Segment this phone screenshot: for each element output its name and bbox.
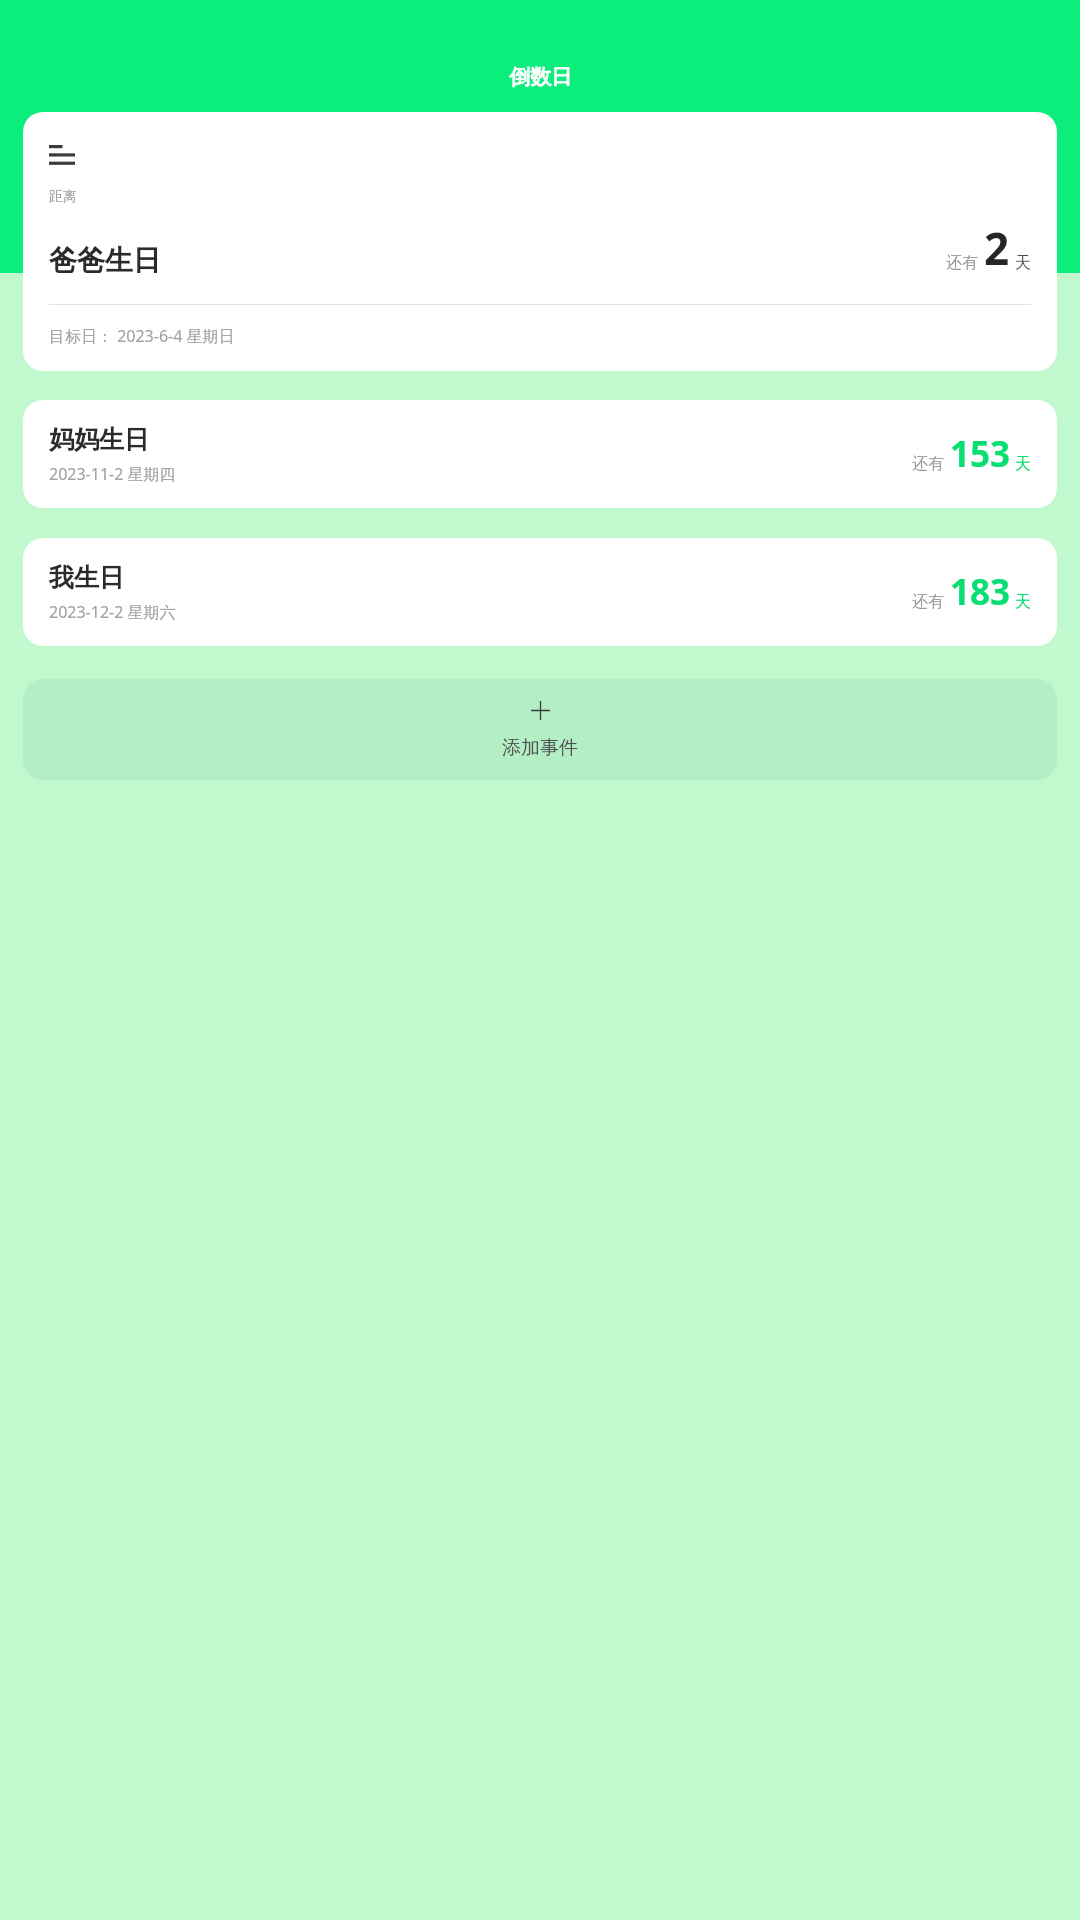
staticText: 还有 (912, 454, 944, 474)
staticText: 天 (1015, 253, 1031, 273)
staticText: 153 (950, 430, 1011, 478)
staticText: 还有 (946, 253, 978, 273)
button[interactable]: Menu (49, 140, 79, 170)
staticText: 添加事件 (502, 736, 578, 760)
staticText: 目标日： 2023-6-4 星期日 (49, 325, 235, 347)
staticText: 妈妈生日 (49, 424, 149, 455)
staticText: 2023-11-2 星期四 (49, 463, 176, 485)
staticText: 我生日 (49, 562, 124, 593)
staticText: 183 (950, 568, 1011, 616)
staticText: 2 (984, 218, 1010, 278)
staticText: 天 (1015, 454, 1031, 474)
button[interactable]: 添加事件 (23, 679, 1057, 780)
staticText: 爸爸生日 (49, 243, 161, 278)
staticText: 倒数日 (509, 64, 572, 90)
staticText: 还有 (912, 592, 944, 612)
staticText: 距离 (49, 188, 77, 206)
staticText: 2023-12-2 星期六 (49, 601, 176, 623)
staticText: 天 (1015, 592, 1031, 612)
button[interactable]: Menu (23, 112, 1057, 371)
button[interactable]: 我生日 (23, 538, 1057, 646)
button[interactable]: 妈妈生日 (23, 400, 1057, 508)
